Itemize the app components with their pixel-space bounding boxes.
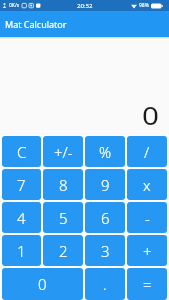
staticText: Mat Calculator — [5, 18, 67, 30]
staticText: C — [17, 142, 27, 162]
staticText: 1 — [17, 241, 26, 261]
staticText: 9 — [101, 175, 110, 195]
button[interactable]: 8 — [43, 169, 83, 200]
staticText: % — [99, 142, 112, 162]
button[interactable]: 4 — [2, 202, 41, 233]
button[interactable]: / — [127, 136, 167, 167]
staticText: x — [143, 175, 151, 195]
staticText: . — [103, 274, 107, 294]
staticText: 98% — [139, 2, 149, 9]
button[interactable]: x — [127, 169, 167, 200]
button[interactable]: % — [85, 136, 125, 167]
button[interactable]: . — [85, 268, 125, 300]
button[interactable]: 9 — [85, 169, 125, 200]
staticText: 2 — [59, 241, 68, 261]
staticText: 0K/s — [9, 2, 20, 9]
staticText: 20:52 — [77, 2, 93, 10]
staticText: 4 — [17, 208, 26, 228]
staticText: 8 — [59, 175, 68, 195]
staticText: + — [143, 241, 152, 261]
staticText: 5 — [59, 208, 68, 228]
staticText: = — [143, 274, 152, 294]
staticText: 7 — [17, 175, 26, 195]
staticText: +/- — [54, 142, 73, 162]
staticText: / — [144, 142, 150, 162]
button[interactable]: 0 — [2, 268, 83, 300]
button[interactable]: - — [127, 202, 167, 233]
button[interactable]: 7 — [2, 169, 41, 200]
button[interactable]: C — [2, 136, 41, 167]
button[interactable]: 5 — [43, 202, 83, 233]
button[interactable]: +/- — [43, 136, 83, 167]
staticText: 6 — [101, 208, 110, 228]
staticText: 0 — [38, 274, 47, 294]
button[interactable]: + — [127, 235, 167, 266]
button[interactable]: 6 — [85, 202, 125, 233]
staticText: - — [145, 208, 150, 228]
button[interactable]: 1 — [2, 235, 41, 266]
staticText: 3 — [101, 241, 110, 261]
button[interactable]: = — [127, 268, 167, 300]
staticText: 0 — [142, 97, 159, 132]
button[interactable]: 2 — [43, 235, 83, 266]
button[interactable]: 3 — [85, 235, 125, 266]
